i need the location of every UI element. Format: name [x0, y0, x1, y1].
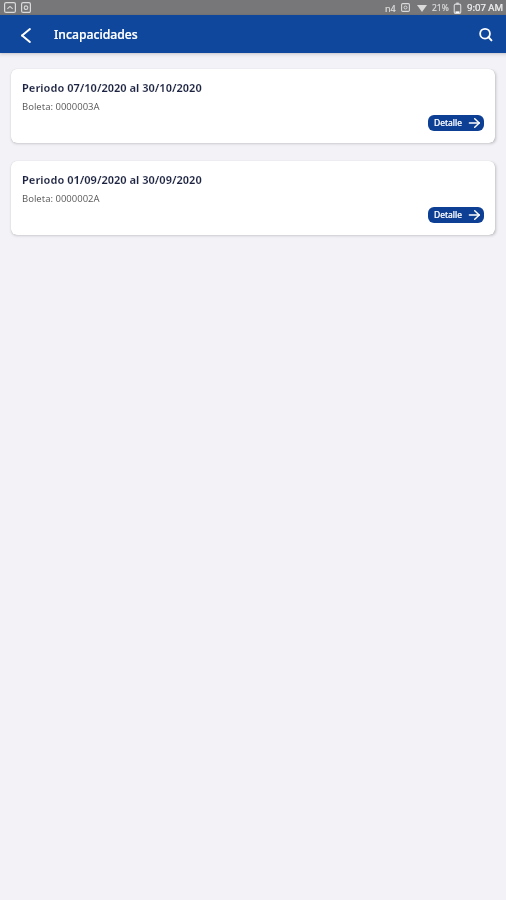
staticText: Periodo 01/09/2020 al 30/09/2020 [22, 172, 202, 187]
button[interactable]: Detalle [428, 207, 484, 223]
button[interactable]: Periodo 01/09/2020 al 30/09/2020 [11, 161, 495, 235]
staticText: Periodo 07/10/2020 al 30/10/2020 [22, 80, 202, 95]
staticText: Detalle [434, 117, 463, 129]
staticText: Incapacidades [54, 26, 138, 43]
button[interactable]: Detalle [428, 115, 484, 131]
staticText: 21% [432, 2, 449, 14]
staticText: 9:07 AM [467, 1, 504, 14]
staticText: Detalle [434, 209, 463, 221]
button[interactable]: Search [465, 15, 505, 53]
staticText: n4 [385, 2, 396, 14]
button[interactable]: Periodo 07/10/2020 al 30/10/2020 [11, 69, 495, 143]
button[interactable]: Back [0, 15, 38, 53]
staticText: Boleta: 0000003A [22, 100, 100, 113]
staticText: Boleta: 0000002A [22, 192, 100, 205]
